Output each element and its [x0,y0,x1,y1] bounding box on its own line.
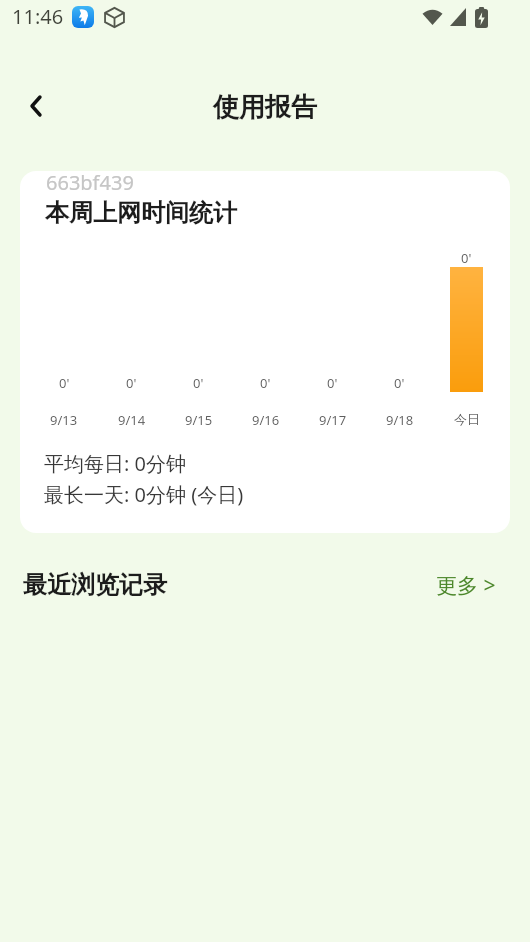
staticText: 11:46 [12,3,64,30]
staticText: 9/14 [118,411,146,429]
staticText: 9/13 [50,411,78,429]
staticText: 最近浏览记录 [23,570,167,600]
button[interactable] [16,86,56,126]
staticText: 本周上网时间统计 [45,198,237,228]
staticText: 0' [193,374,204,392]
staticText: 0' [59,374,70,392]
button[interactable]: 更多 > [428,563,504,608]
staticText: 663bf439 [46,171,134,196]
staticText: 平均每日: 0分钟 [44,450,186,477]
staticText: 最长一天: 0分钟 (今日) [44,481,244,508]
staticText: 今日 [454,411,480,427]
staticText: 0' [126,374,137,392]
staticText: 0' [394,374,405,392]
staticText: 9/17 [319,411,347,429]
staticText: 9/18 [386,411,414,429]
staticText: 0' [461,249,472,267]
staticText: 9/16 [252,411,280,429]
staticText: 9/15 [185,411,213,429]
staticText: 0' [260,374,271,392]
staticText: 使用报告 [213,91,317,124]
staticText: 0' [327,374,338,392]
staticText: 更多 > [436,571,496,600]
